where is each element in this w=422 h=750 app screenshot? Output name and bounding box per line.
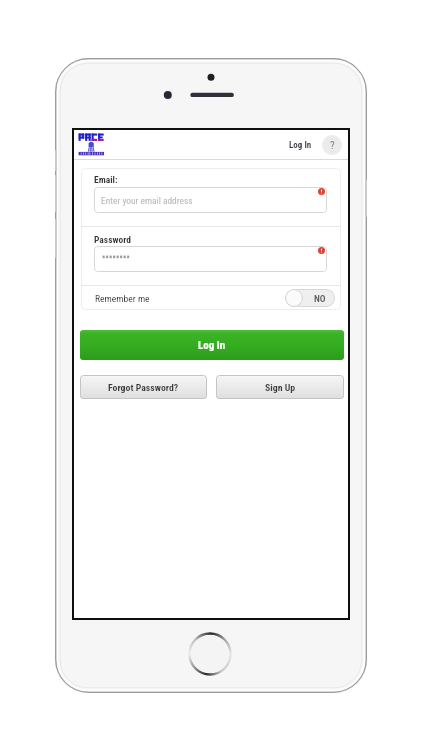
staticText: ? xyxy=(330,139,335,152)
staticText: Sign Up xyxy=(265,382,296,393)
staticText: Enter your email address xyxy=(101,195,193,206)
button[interactable]: Log In xyxy=(80,330,344,360)
staticText: Log In xyxy=(198,339,226,352)
button[interactable]: Forgot Password? xyxy=(80,375,207,399)
staticText: Remember me xyxy=(95,293,150,304)
staticText: Password xyxy=(94,234,131,245)
staticText: NO xyxy=(314,293,326,304)
button[interactable]: Help xyxy=(322,135,342,155)
button[interactable]: Sign Up xyxy=(216,375,344,399)
button[interactable]: Log In xyxy=(287,136,314,155)
button[interactable]: Remember me xyxy=(81,286,341,310)
button[interactable] xyxy=(94,246,327,272)
button[interactable]: Enter your email address xyxy=(94,187,327,213)
staticText: Log In xyxy=(289,140,312,151)
staticText: Forgot Password? xyxy=(108,382,179,393)
staticText: Email: xyxy=(94,174,118,185)
